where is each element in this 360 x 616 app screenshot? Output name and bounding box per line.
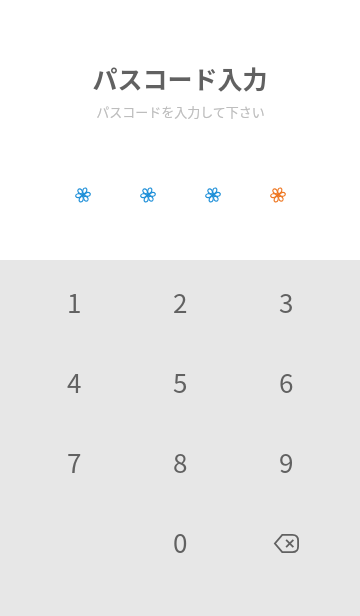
- staticText: 5: [173, 363, 188, 401]
- staticText: 2: [173, 283, 188, 321]
- button[interactable]: 7: [21, 422, 127, 502]
- staticText: パスコード入力: [92, 60, 268, 96]
- button[interactable]: 2: [127, 262, 233, 342]
- button[interactable]: 8: [127, 422, 233, 502]
- staticText: 7: [67, 443, 82, 481]
- staticText: 6: [279, 363, 294, 401]
- button[interactable]: 6: [233, 342, 339, 422]
- button[interactable]: 9: [233, 422, 339, 502]
- button[interactable]: Delete: [233, 502, 339, 582]
- button[interactable]: 4: [21, 342, 127, 422]
- button[interactable]: 5: [127, 342, 233, 422]
- staticText: パスコードを入力して下さい: [96, 102, 265, 121]
- staticText: 1: [67, 283, 82, 321]
- staticText: 8: [173, 443, 188, 481]
- button[interactable]: 3: [233, 262, 339, 342]
- staticText: 9: [279, 443, 294, 481]
- staticText: 3: [279, 283, 294, 321]
- button[interactable]: 0: [127, 502, 233, 582]
- button[interactable]: 1: [21, 262, 127, 342]
- staticText: 4: [67, 363, 82, 401]
- staticText: 0: [173, 523, 188, 561]
